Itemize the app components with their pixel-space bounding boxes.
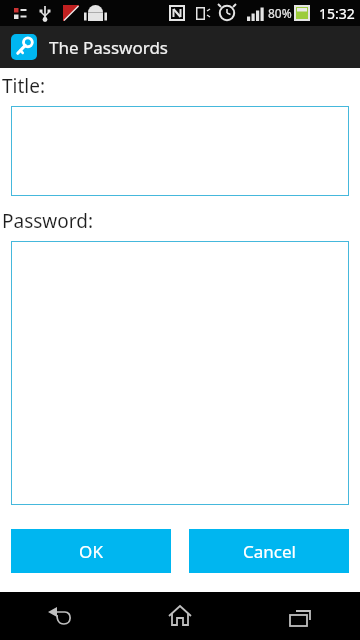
button[interactable]: Home xyxy=(120,592,240,640)
staticText: The Passwords xyxy=(49,36,168,59)
button[interactable] xyxy=(11,106,349,196)
button[interactable]: Cancel xyxy=(189,529,349,573)
button[interactable] xyxy=(11,241,349,505)
button[interactable]: Back xyxy=(0,592,120,640)
staticText: Cancel xyxy=(243,540,296,563)
staticText: Password: xyxy=(2,208,94,234)
button[interactable]: The Passwords xyxy=(0,26,360,68)
staticText: OK xyxy=(79,540,103,563)
staticText: Title: xyxy=(2,73,46,99)
button[interactable]: OK xyxy=(11,529,171,573)
button[interactable]: Recents xyxy=(240,592,360,640)
staticText: 80% xyxy=(268,5,292,21)
staticText: 15:32 xyxy=(319,4,355,23)
